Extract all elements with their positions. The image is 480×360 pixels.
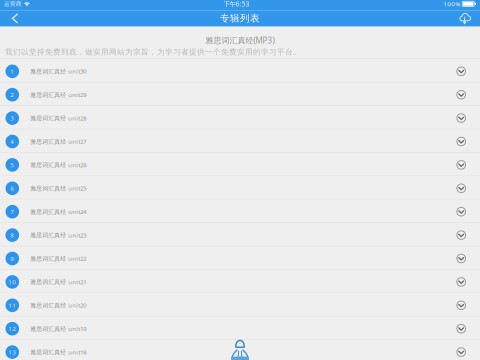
staticText: 9 bbox=[10, 254, 14, 263]
button[interactable]: 10 bbox=[0, 269, 480, 292]
staticText: 3 bbox=[10, 114, 14, 122]
staticText: 雅思词汇真经 unit29 bbox=[30, 91, 86, 99]
button[interactable]: 1 bbox=[0, 58, 480, 82]
staticText: 运营商 bbox=[4, 0, 22, 7]
staticText: 雅思词汇真经 unit20 bbox=[30, 301, 86, 309]
button[interactable]: 13 bbox=[0, 339, 480, 360]
staticText: 雅思词汇真经 unit26 bbox=[30, 161, 86, 169]
staticText: 雅思词汇真经(MP3) bbox=[205, 35, 274, 46]
staticText: 下午6:53 bbox=[223, 0, 249, 8]
button[interactable]: 6 bbox=[0, 175, 480, 199]
staticText: 100% bbox=[443, 0, 460, 8]
staticText: 专辑列表 bbox=[220, 12, 260, 24]
button[interactable]: 2 bbox=[0, 82, 480, 105]
staticText: 8 bbox=[10, 231, 14, 239]
staticText: 雅思词汇真经 unit19 bbox=[30, 325, 86, 333]
staticText: 6 bbox=[10, 184, 14, 192]
button[interactable]: 8 bbox=[0, 222, 480, 246]
button[interactable]: 3 bbox=[0, 105, 480, 129]
button[interactable]: 12 bbox=[0, 316, 480, 339]
staticText: 雅思词汇真经 unit23 bbox=[30, 231, 86, 239]
staticText: 11 bbox=[8, 301, 16, 309]
staticText: 4 bbox=[10, 137, 14, 146]
staticText: 10 bbox=[8, 278, 16, 286]
button[interactable]: 9 bbox=[0, 246, 480, 269]
staticText: 雅思词汇真经 unit24 bbox=[30, 208, 86, 216]
button[interactable]: 5 bbox=[0, 152, 480, 175]
staticText: 雅思词汇真经 unit27 bbox=[30, 137, 86, 145]
staticText: 5 bbox=[10, 161, 14, 169]
staticText: 我们以坚持免费到底，做实用网站为宗旨，为学习者提供一个免费实用的学习平台。 bbox=[5, 47, 301, 57]
button[interactable]: 7 bbox=[0, 199, 480, 222]
staticText: 雅思词汇真经 unit25 bbox=[30, 184, 86, 192]
button[interactable]: 11 bbox=[0, 292, 480, 316]
staticText: 雅思词汇真经 unit21 bbox=[30, 278, 86, 286]
button[interactable]: Back bbox=[4, 10, 26, 26]
button[interactable]: Download bbox=[454, 10, 476, 26]
staticText: 雅思词汇真经 unit30 bbox=[30, 67, 86, 75]
staticText: 2 bbox=[10, 90, 14, 99]
staticText: 雅思词汇真经 unit18 bbox=[30, 348, 86, 356]
staticText: 12 bbox=[8, 324, 16, 333]
staticText: 雅思词汇真经 unit28 bbox=[30, 114, 86, 122]
staticText: 1 bbox=[10, 67, 14, 75]
staticText: 13 bbox=[8, 348, 16, 356]
staticText: 雅思词汇真经 unit22 bbox=[30, 254, 86, 262]
staticText: 7 bbox=[10, 207, 14, 216]
button[interactable]: 4 bbox=[0, 129, 480, 152]
